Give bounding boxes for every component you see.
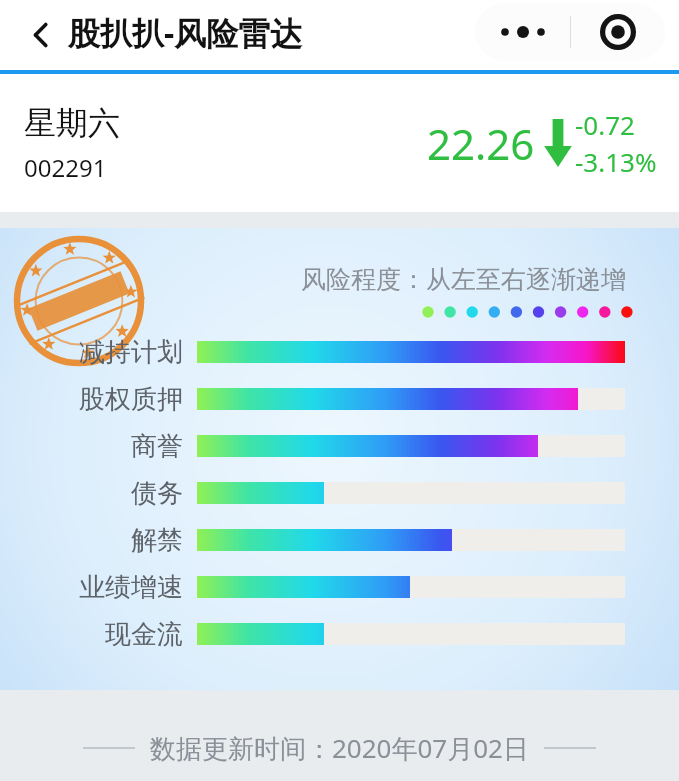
staticText: 债务	[0, 477, 183, 510]
staticText: -0.72	[575, 107, 635, 142]
staticText: 数据更新时间：2020年07月02日	[150, 730, 529, 766]
staticText: 风险程度：从左至右逐渐递增	[301, 264, 626, 295]
button[interactable]: Back	[18, 12, 64, 58]
staticText: 解禁	[0, 524, 183, 557]
staticText: 002291	[24, 151, 107, 184]
staticText: 业绩增速	[0, 571, 183, 604]
staticText: 现金流	[0, 618, 183, 651]
staticText: 股权质押	[0, 383, 183, 416]
button[interactable]: Mini program menu	[570, 3, 665, 61]
staticText: 22.26	[427, 115, 535, 172]
staticText: 减持计划	[0, 336, 183, 369]
staticText: -3.13%	[575, 144, 657, 179]
staticText: 商誉	[0, 430, 183, 463]
staticText: 星期六	[24, 103, 120, 143]
button[interactable]: More options	[475, 3, 570, 61]
staticText: 股扒扒-风险雷达	[68, 11, 303, 55]
